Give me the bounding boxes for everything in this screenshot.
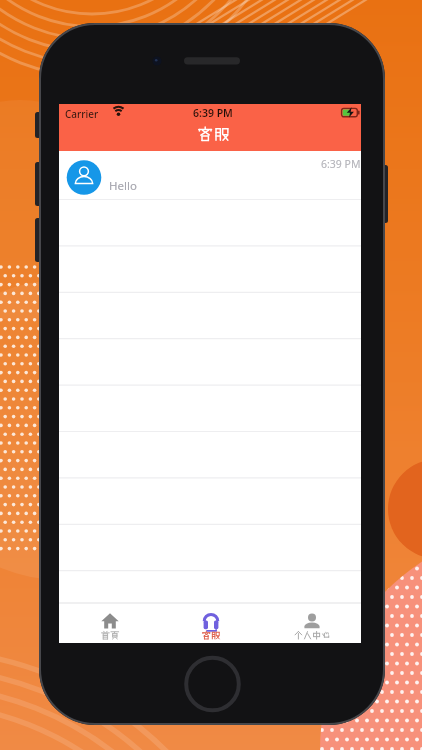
- button[interactable]: [260, 604, 361, 643]
- staticText: 6:39 PM: [193, 106, 233, 120]
- button[interactable]: [59, 152, 361, 199]
- staticText: Carrier: [65, 107, 99, 121]
- button[interactable]: [160, 604, 260, 643]
- staticText: Hello: [109, 178, 137, 194]
- button[interactable]: [60, 604, 160, 643]
- staticText: 6:39 PM: [321, 157, 361, 171]
